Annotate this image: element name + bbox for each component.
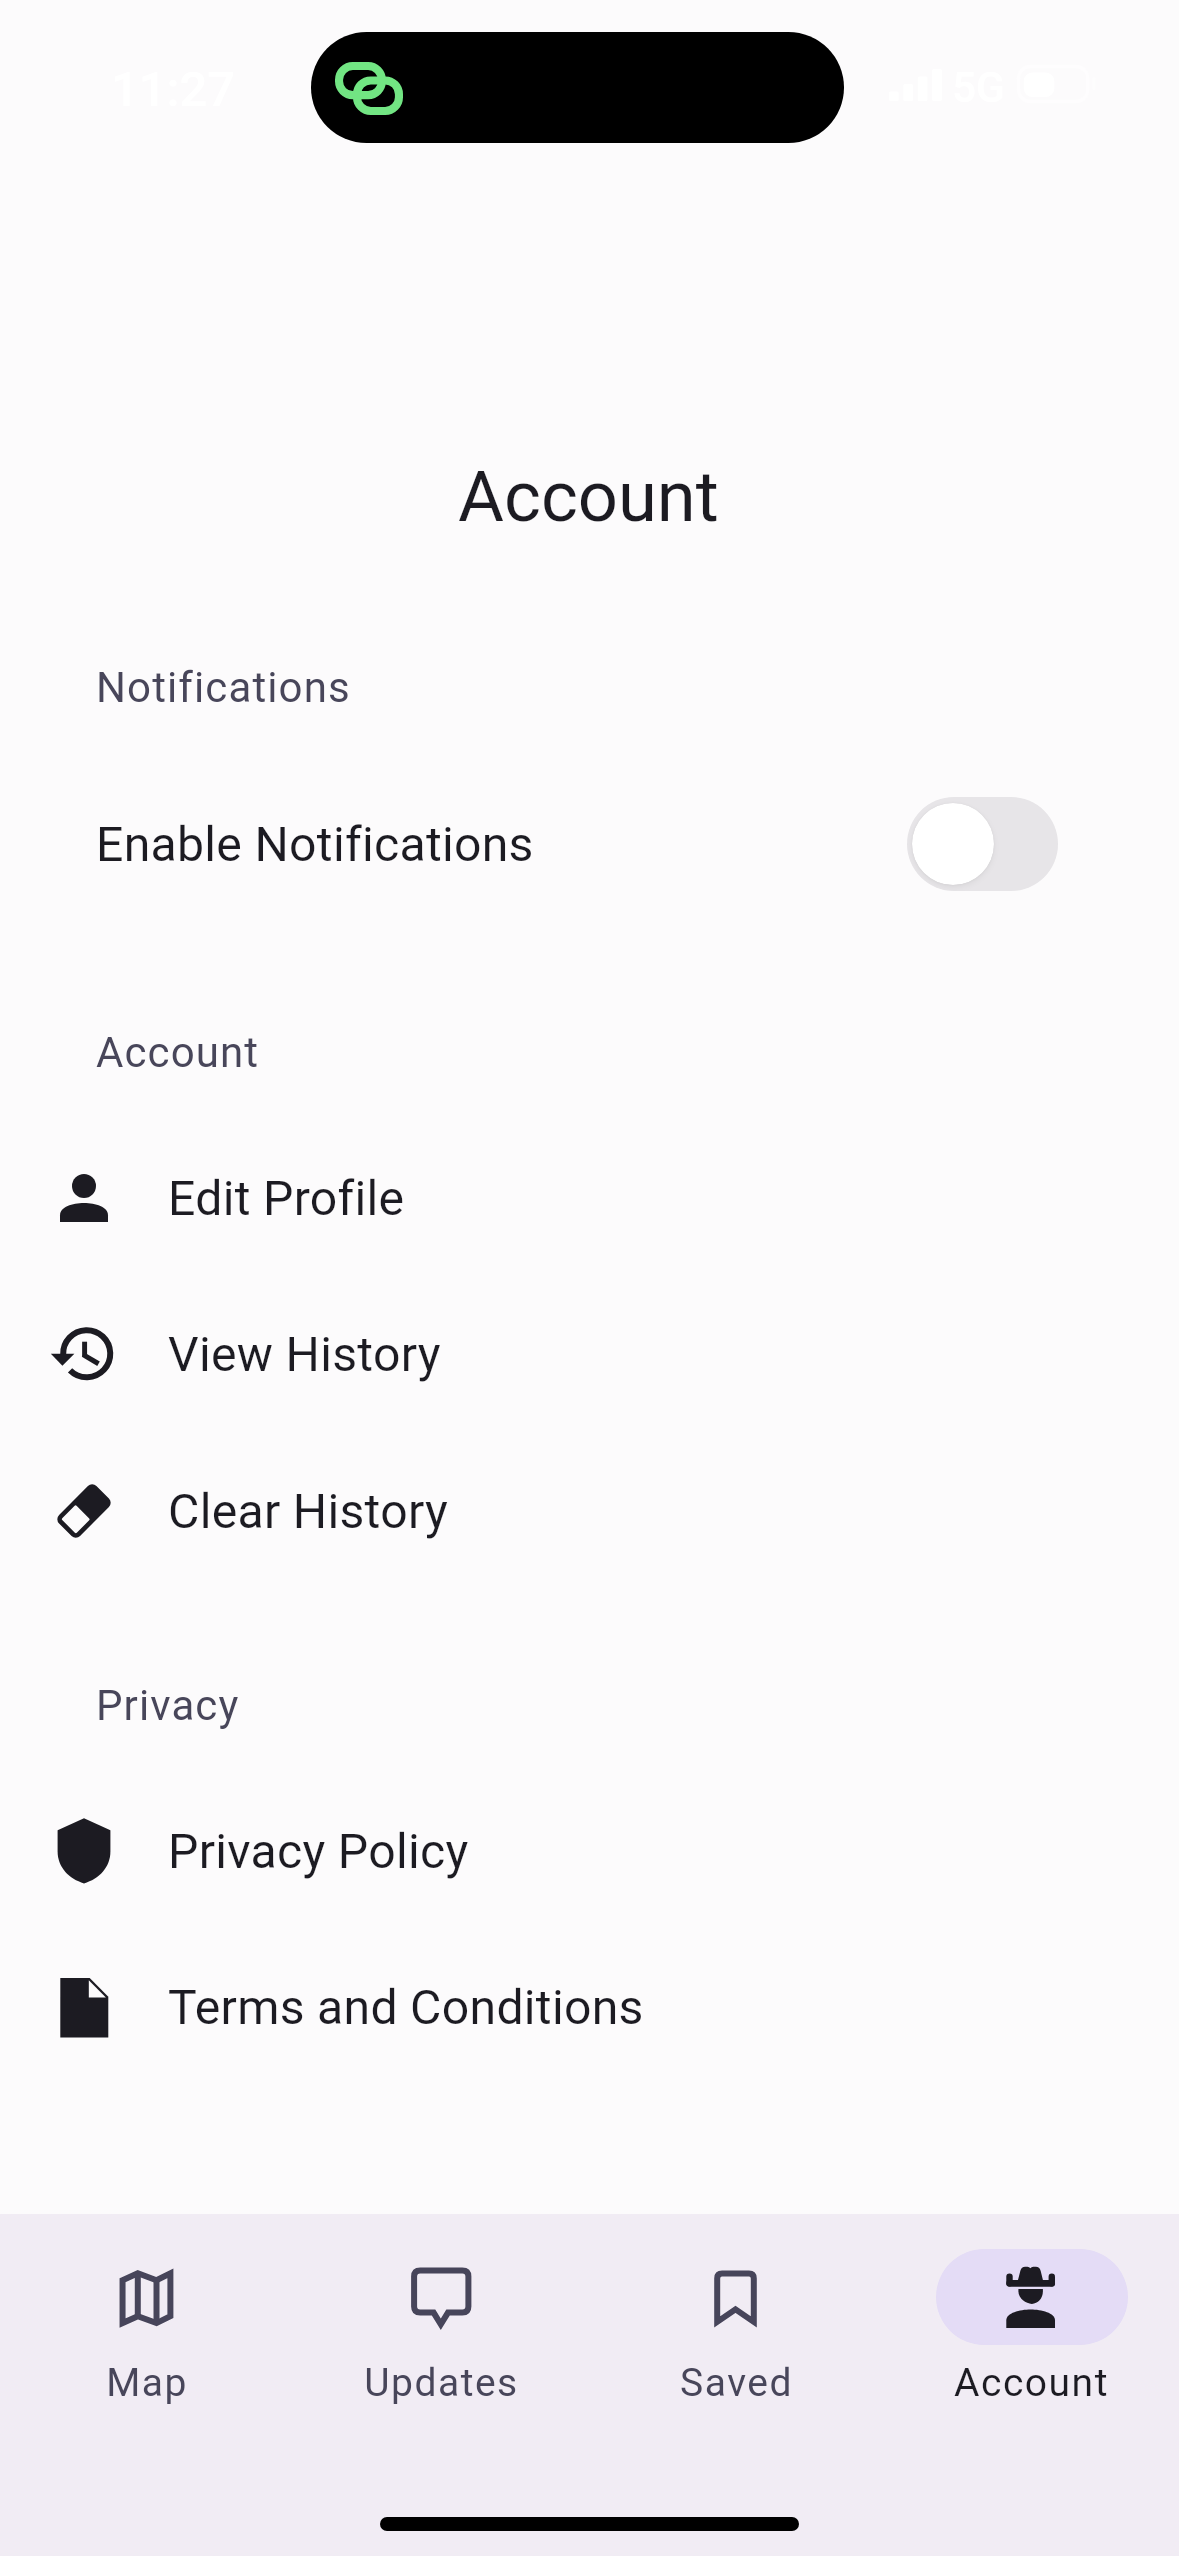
staticText: Updates: [364, 2360, 519, 2406]
staticText: Account: [96, 1028, 260, 1077]
staticText: Clear History: [168, 1483, 449, 1539]
staticText: Edit Profile: [168, 1170, 405, 1226]
staticText: Enable Notifications: [96, 816, 534, 872]
button[interactable]: Updates: [294, 2214, 589, 2406]
button[interactable]: Saved: [589, 2214, 884, 2406]
staticText: Map: [106, 2360, 188, 2406]
staticText: Account: [954, 2360, 1109, 2406]
staticText: Terms and Conditions: [168, 1979, 644, 2035]
staticText: Account: [458, 456, 719, 539]
button[interactable]: Privacy Policy: [0, 1782, 1179, 1920]
staticText: Saved: [680, 2360, 793, 2406]
button[interactable]: Terms and Conditions: [0, 1938, 1179, 2076]
button[interactable]: Enable Notifications: [0, 775, 1179, 913]
button[interactable]: View History: [0, 1285, 1179, 1423]
button[interactable]: Map: [0, 2214, 294, 2406]
button[interactable]: Clear History: [0, 1442, 1179, 1580]
staticText: View History: [168, 1326, 441, 1382]
button[interactable]: Toggle Enable Notifications: [907, 797, 1058, 891]
button[interactable]: Account: [884, 2214, 1179, 2406]
staticText: Notifications: [96, 663, 351, 712]
staticText: Privacy: [96, 1681, 240, 1730]
staticText: Privacy Policy: [168, 1823, 469, 1879]
button[interactable]: Edit Profile: [0, 1129, 1179, 1267]
